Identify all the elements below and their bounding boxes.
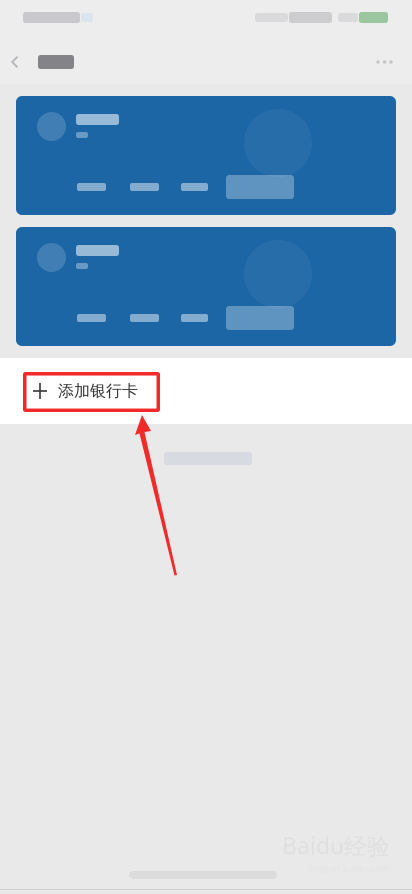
staticText: 添加银行卡 [58, 381, 138, 401]
button[interactable] [16, 96, 396, 215]
staticText: Baidu经验 [282, 830, 390, 861]
button[interactable]: Back [0, 40, 86, 84]
button[interactable]: 添加银行卡 [0, 358, 412, 424]
button[interactable]: More options [376, 40, 412, 84]
button[interactable] [16, 227, 396, 346]
